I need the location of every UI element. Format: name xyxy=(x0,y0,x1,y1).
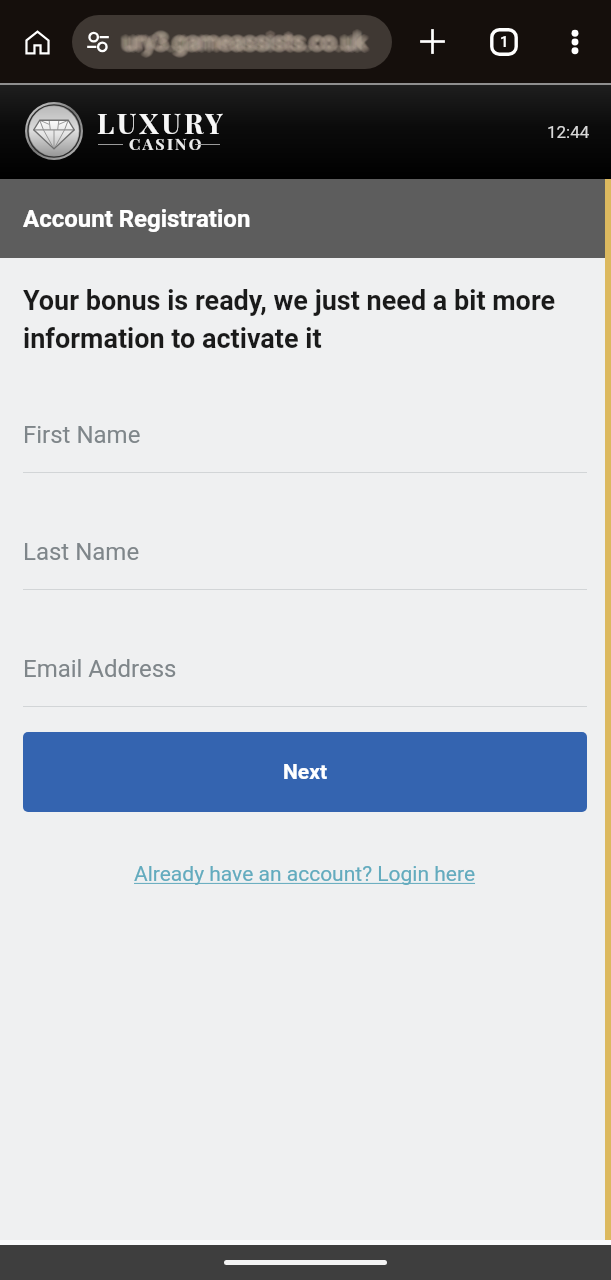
staticText: ury3.gameassists.co.uk xyxy=(120,31,364,58)
staticText: ury3.gameassists.co.uk xyxy=(121,30,365,57)
staticText: ury3.gameassists.co.uk xyxy=(124,27,368,54)
staticText: ury3.gameassists.co.uk xyxy=(120,28,364,55)
staticText: 12:44 xyxy=(547,122,590,142)
button[interactable]: Last Name xyxy=(23,538,587,590)
button[interactable]: More options xyxy=(552,19,597,64)
button[interactable]: Next xyxy=(23,732,587,812)
staticText: Your bonus is ready, we just need a bit … xyxy=(23,285,587,355)
staticText: ury3.gameassists.co.uk xyxy=(120,29,364,56)
staticText: ury3.gameassists.co.uk xyxy=(124,26,368,53)
staticText: ury3.gameassists.co.uk xyxy=(126,28,370,55)
button[interactable]: Tabs xyxy=(481,19,526,64)
staticText: ury3.gameassists.co.uk xyxy=(123,27,367,54)
staticText: First Name xyxy=(23,421,141,449)
staticText: ury3.gameassists.co.uk xyxy=(124,32,368,59)
staticText: ury3.gameassists.co.uk xyxy=(120,27,364,54)
staticText: ury3.gameassists.co.uk xyxy=(121,28,365,55)
staticText: ury3.gameassists.co.uk xyxy=(121,31,365,58)
staticText: ury3.gameassists.co.uk xyxy=(126,31,370,58)
staticText: ury3.gameassists.co.uk xyxy=(119,30,363,57)
staticText: ury3.gameassists.co.uk xyxy=(123,31,367,58)
staticText: ury3.gameassists.co.uk xyxy=(120,30,364,57)
button[interactable]: Home xyxy=(15,20,59,64)
staticText: ury3.gameassists.co.uk xyxy=(125,28,369,55)
button[interactable]: Already have an account? Login here xyxy=(134,862,476,887)
staticText: ury3.gameassists.co.uk xyxy=(123,30,367,57)
staticText: ury3.gameassists.co.uk xyxy=(122,29,366,56)
staticText: ury3.gameassists.co.uk xyxy=(124,29,368,56)
staticText: Email Address xyxy=(23,655,177,683)
button[interactable]: First Name xyxy=(23,421,587,473)
staticText: ury3.gameassists.co.uk xyxy=(126,27,370,54)
staticText: ury3.gameassists.co.uk xyxy=(122,27,366,54)
staticText: ury3.gameassists.co.uk xyxy=(123,28,367,55)
staticText: ury3.gameassists.co.uk xyxy=(127,29,371,56)
button[interactable]: Email Address xyxy=(23,655,587,707)
button[interactable]: New tab xyxy=(410,19,455,64)
staticText: ury3.gameassists.co.uk xyxy=(125,30,369,57)
staticText: ury3.gameassists.co.uk xyxy=(125,31,369,58)
staticText: LUXURY xyxy=(97,104,226,141)
staticText: ury3.gameassists.co.uk xyxy=(121,27,365,54)
staticText: CASINO xyxy=(129,133,204,154)
staticText: ury3.gameassists.co.uk xyxy=(125,29,369,56)
staticText: ury3.gameassists.co.uk xyxy=(122,31,366,58)
staticText: ury3.gameassists.co.uk xyxy=(127,28,371,55)
staticText: ury3.gameassists.co.uk xyxy=(124,31,368,58)
staticText: Last Name xyxy=(23,538,140,566)
staticText: ury3.gameassists.co.uk xyxy=(122,26,366,53)
staticText: ury3.gameassists.co.uk xyxy=(124,28,368,55)
staticText: ury3.gameassists.co.uk xyxy=(123,26,367,53)
staticText: ury3.gameassists.co.uk xyxy=(126,30,370,57)
staticText: Next xyxy=(283,760,327,785)
staticText: ury3.gameassists.co.uk xyxy=(119,28,363,55)
staticText: ury3.gameassists.co.uk xyxy=(123,32,367,59)
staticText: ury3.gameassists.co.uk xyxy=(122,28,366,55)
staticText: 1 xyxy=(500,33,509,51)
staticText: ury3.gameassists.co.uk xyxy=(122,32,366,59)
staticText: Account Registration xyxy=(23,205,251,233)
button[interactable]: ury3.gameassists.co.uk xyxy=(72,15,392,69)
staticText: ury3.gameassists.co.uk xyxy=(121,29,365,56)
staticText: ury3.gameassists.co.uk xyxy=(124,30,368,57)
staticText: ury3.gameassists.co.uk xyxy=(123,29,367,56)
staticText: ury3.gameassists.co.uk xyxy=(127,30,371,57)
staticText: ury3.gameassists.co.uk xyxy=(126,29,370,56)
staticText: ury3.gameassists.co.uk xyxy=(125,27,369,54)
staticText: ury3.gameassists.co.uk xyxy=(122,30,366,57)
staticText: ury3.gameassists.co.uk xyxy=(119,29,363,56)
